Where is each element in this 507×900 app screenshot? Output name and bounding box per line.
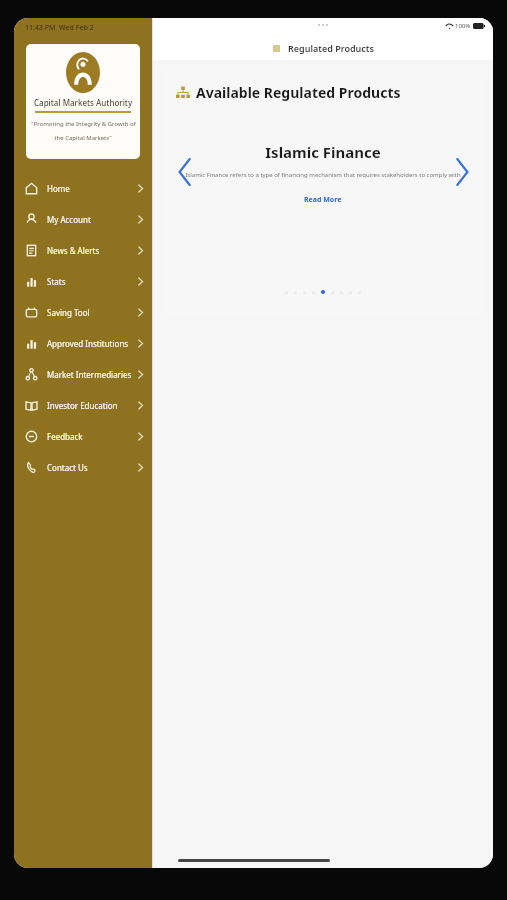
button[interactable]: Investor Education <box>14 390 152 421</box>
staticText: Home <box>47 183 137 194</box>
staticText: Read More <box>304 195 342 205</box>
staticText: Available Regulated Products <box>196 83 401 102</box>
button[interactable]: News & Alerts <box>14 235 152 266</box>
button[interactable]: Previous product <box>174 155 194 189</box>
staticText: Islamic Finance <box>164 142 482 162</box>
staticText: Regulated Products <box>288 42 374 54</box>
staticText: 11:43 PM Wed Feb 2 <box>25 23 94 33</box>
staticText: News & Alerts <box>47 245 137 256</box>
staticText: the Capital Markets" <box>54 134 112 142</box>
button[interactable]: Home <box>14 173 152 204</box>
staticText: Islamic Finance refers to a type of fina… <box>168 171 478 179</box>
staticText: 100% <box>455 22 471 30</box>
staticText: Stats <box>47 276 137 287</box>
button[interactable]: Read More <box>298 193 348 207</box>
button[interactable] <box>358 291 361 294</box>
button[interactable]: Next product <box>452 155 472 189</box>
button[interactable] <box>285 291 288 294</box>
button[interactable]: Stats <box>14 266 152 297</box>
button[interactable] <box>349 291 352 294</box>
button[interactable] <box>303 291 306 294</box>
button[interactable] <box>294 291 297 294</box>
staticText: Capital Markets Authority <box>34 97 133 108</box>
button[interactable] <box>321 290 325 294</box>
button[interactable] <box>331 291 334 294</box>
staticText: Market Intermediaries <box>47 369 137 380</box>
button[interactable]: Market Intermediaries <box>14 359 152 390</box>
button[interactable]: My Account <box>14 204 152 235</box>
staticText: Contact Us <box>47 462 137 473</box>
button[interactable] <box>312 291 315 294</box>
button[interactable] <box>340 291 343 294</box>
staticText: My Account <box>47 214 137 225</box>
staticText: Approved Institutions <box>47 338 137 349</box>
staticText: "Promoting the Integrity & Growth of <box>31 120 136 128</box>
staticText: Saving Tool <box>47 307 137 318</box>
staticText: Investor Education <box>47 400 137 411</box>
button[interactable]: Contact Us <box>14 452 152 483</box>
button[interactable]: Capital Markets Authority <box>26 44 140 159</box>
button[interactable]: Feedback <box>14 421 152 452</box>
button[interactable]: Approved Institutions <box>14 328 152 359</box>
staticText: Feedback <box>47 431 137 442</box>
button[interactable]: Saving Tool <box>14 297 152 328</box>
